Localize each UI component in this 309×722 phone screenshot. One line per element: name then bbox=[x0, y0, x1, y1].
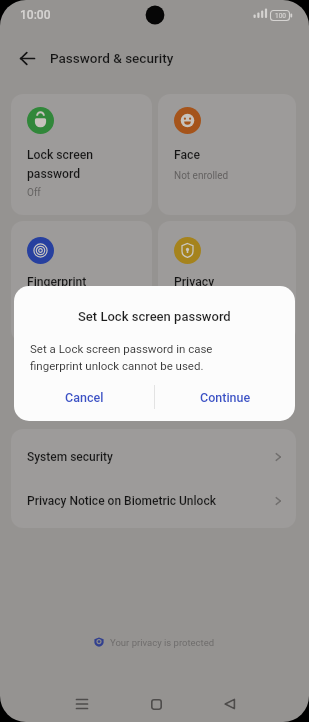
button[interactable] bbox=[210, 686, 250, 722]
staticText: Continue bbox=[200, 390, 251, 405]
staticText: Lock screen password bbox=[27, 148, 94, 181]
button[interactable]: Continue bbox=[155, 378, 295, 417]
staticText: Set Lock screen password bbox=[78, 309, 231, 324]
staticText: Cancel bbox=[65, 390, 104, 405]
staticText: Privacy Notice on Biometric Unlock bbox=[27, 494, 216, 508]
staticText: Not enrolled bbox=[174, 170, 229, 182]
button[interactable] bbox=[62, 686, 102, 722]
staticText: Privacy bbox=[174, 275, 215, 289]
button[interactable]: Lock screen password bbox=[11, 94, 152, 215]
button[interactable]: Face bbox=[158, 94, 296, 215]
staticText: Off bbox=[27, 187, 41, 199]
staticText: Password & security bbox=[50, 50, 174, 66]
staticText: System security bbox=[27, 450, 113, 464]
button[interactable]: Fingerprint bbox=[11, 221, 152, 342]
button[interactable]: Privacy Notice on Biometric Unlock bbox=[11, 476, 296, 525]
button[interactable]: Privacy bbox=[158, 221, 296, 342]
staticText: 100 bbox=[275, 12, 286, 20]
staticText: Your privacy is protected bbox=[110, 637, 215, 648]
button[interactable] bbox=[136, 686, 176, 722]
button[interactable] bbox=[10, 44, 44, 72]
staticText: Fingerprint bbox=[27, 275, 87, 289]
staticText: Face bbox=[174, 148, 201, 162]
button[interactable]: Cancel bbox=[14, 378, 154, 417]
staticText: Set a Lock screen password in case finge… bbox=[30, 342, 213, 373]
staticText: 10:00 bbox=[20, 8, 51, 22]
button[interactable]: System security bbox=[11, 432, 296, 481]
